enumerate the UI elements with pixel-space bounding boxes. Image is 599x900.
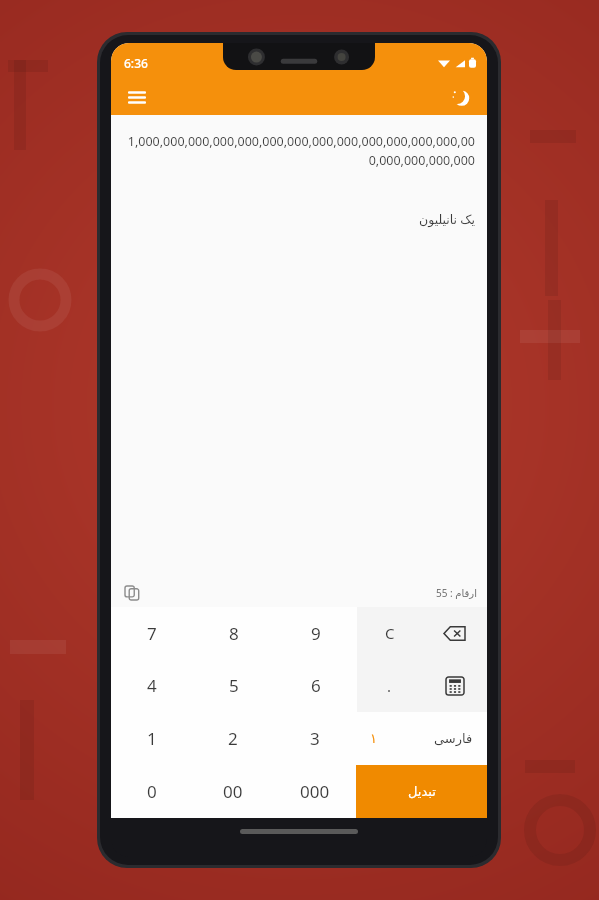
staticText: 2 bbox=[228, 727, 238, 750]
button[interactable]: Night mode bbox=[441, 79, 479, 115]
button[interactable]: 6 bbox=[275, 659, 357, 712]
staticText: 0 bbox=[147, 780, 157, 803]
button[interactable]: 7 bbox=[111, 607, 193, 659]
button[interactable]: 3 bbox=[274, 712, 356, 765]
staticText: تبدیل bbox=[408, 784, 436, 799]
button[interactable]: C bbox=[357, 607, 422, 659]
staticText: 5 bbox=[229, 674, 239, 697]
button[interactable]: 8 bbox=[193, 607, 275, 659]
button[interactable]: تبدیل bbox=[356, 765, 487, 818]
button[interactable]: Copy bbox=[117, 578, 147, 607]
staticText: C bbox=[385, 623, 395, 643]
staticText: . bbox=[387, 676, 392, 696]
button[interactable]: . bbox=[357, 659, 422, 712]
button[interactable]: 2 bbox=[192, 712, 274, 765]
staticText: 6 bbox=[311, 674, 321, 697]
staticText: یک نانیلیون bbox=[123, 211, 475, 228]
button[interactable]: 1 bbox=[111, 712, 192, 765]
button[interactable]: 4 bbox=[111, 659, 193, 712]
staticText: فارسی bbox=[434, 731, 473, 746]
button[interactable]: 5 bbox=[193, 659, 275, 712]
staticText: 1,000,000,000,000,000,000,000,000,000,00… bbox=[123, 133, 475, 169]
button[interactable]: Farsi bbox=[356, 712, 487, 765]
button[interactable]: Calculator bbox=[422, 659, 487, 712]
staticText: 7 bbox=[147, 622, 157, 645]
staticText: ارقام : 55 bbox=[436, 586, 477, 600]
button[interactable]: Backspace bbox=[422, 607, 487, 659]
button[interactable]: 000 bbox=[274, 765, 356, 818]
staticText: 1 bbox=[147, 727, 157, 750]
button[interactable]: 00 bbox=[192, 765, 274, 818]
staticText: 6:36 bbox=[124, 55, 148, 71]
staticText: 8 bbox=[229, 622, 239, 645]
staticText: ۱ bbox=[370, 731, 377, 746]
staticText: 3 bbox=[310, 727, 320, 750]
staticText: 00 bbox=[223, 780, 243, 803]
button[interactable]: 0 bbox=[111, 765, 192, 818]
staticText: 000 bbox=[300, 780, 330, 803]
button[interactable]: Menu bbox=[117, 79, 157, 115]
staticText: 9 bbox=[311, 622, 321, 645]
button[interactable]: 9 bbox=[275, 607, 357, 659]
staticText: 4 bbox=[147, 674, 157, 697]
